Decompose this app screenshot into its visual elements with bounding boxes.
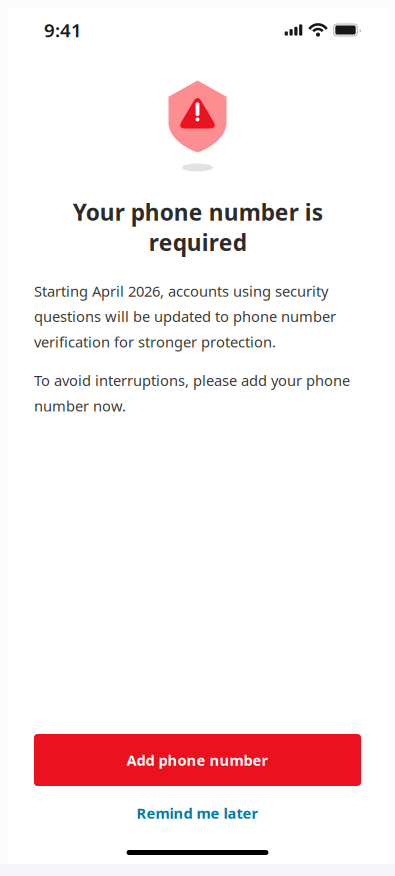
staticText: Starting April 2026, accounts using secu… [34, 281, 336, 352]
button[interactable]: Add phone number [34, 734, 361, 786]
button[interactable]: Remind me later [34, 786, 361, 840]
staticText: To avoid interruptions, please add your … [34, 371, 350, 416]
staticText: Your phone number is required [72, 197, 322, 257]
staticText: Add phone number [126, 750, 268, 770]
staticText: Remind me later [136, 803, 258, 823]
staticText: 9:41 [44, 18, 82, 42]
